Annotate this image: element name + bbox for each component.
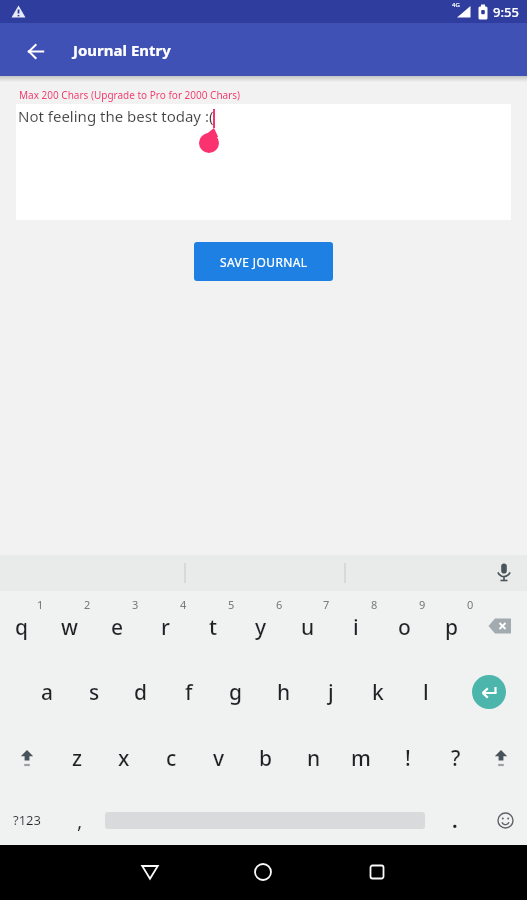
button[interactable]: v <box>196 728 242 788</box>
staticText: x <box>118 744 130 773</box>
staticText: Max 200 Chars (Upgrade to Pro for 2000 C… <box>19 88 241 102</box>
staticText: 9 <box>419 597 426 612</box>
staticText: y <box>255 613 267 642</box>
button[interactable]: l <box>403 662 449 722</box>
button[interactable] <box>132 854 168 890</box>
button[interactable]: k <box>355 662 401 722</box>
staticText: e <box>111 613 124 642</box>
staticText: f <box>185 678 193 707</box>
button[interactable] <box>472 675 506 709</box>
staticText: 3 <box>132 597 139 612</box>
button[interactable]: x <box>101 728 147 788</box>
button[interactable]: e <box>94 597 140 657</box>
staticText: 2 <box>84 597 91 612</box>
staticText: . <box>452 807 458 834</box>
button[interactable]: a <box>24 662 70 722</box>
staticText: c <box>166 744 177 773</box>
staticText: v <box>213 744 225 773</box>
button[interactable]: d <box>118 662 164 722</box>
button[interactable]: n <box>291 728 337 788</box>
button[interactable] <box>18 33 54 69</box>
staticText: w <box>61 613 78 642</box>
button[interactable] <box>359 854 395 890</box>
staticText: d <box>134 678 148 707</box>
button[interactable]: m <box>338 728 384 788</box>
button[interactable]: . <box>432 790 478 850</box>
staticText: 7 <box>323 597 330 612</box>
button[interactable]: , <box>57 790 103 850</box>
staticText: u <box>301 613 315 642</box>
button[interactable] <box>16 104 511 220</box>
button[interactable]: h <box>261 662 307 722</box>
button[interactable]: z <box>54 728 100 788</box>
button[interactable]: j <box>308 662 354 722</box>
staticText: ? <box>451 744 461 773</box>
staticText: g <box>229 678 243 707</box>
staticText: 5 <box>228 597 235 612</box>
staticText: i <box>353 613 359 642</box>
button[interactable]: u <box>285 597 331 657</box>
staticText: 0 <box>467 597 474 612</box>
staticText: m <box>351 744 371 773</box>
staticText: k <box>372 678 384 707</box>
button[interactable] <box>478 728 524 788</box>
staticText: s <box>89 678 100 707</box>
button[interactable]: ? <box>433 728 479 788</box>
button[interactable]: y <box>238 597 284 657</box>
staticText: l <box>423 678 429 707</box>
button[interactable]: ! <box>385 728 431 788</box>
button[interactable]: o <box>381 597 427 657</box>
staticText: a <box>41 678 54 707</box>
button[interactable]: q <box>0 597 45 657</box>
button[interactable]: SAVE JOURNAL <box>194 242 333 281</box>
staticText: q <box>15 613 29 642</box>
staticText: ! <box>405 744 411 773</box>
button[interactable]: s <box>71 662 117 722</box>
button[interactable]: f <box>166 662 212 722</box>
button[interactable]: b <box>243 728 289 788</box>
staticText: p <box>445 613 459 642</box>
staticText: b <box>259 744 273 773</box>
button[interactable]: i <box>333 597 379 657</box>
staticText: n <box>307 744 321 773</box>
staticText: h <box>277 678 291 707</box>
staticText: ?123 <box>13 811 41 829</box>
button[interactable]: c <box>148 728 194 788</box>
button[interactable]: t <box>190 597 236 657</box>
staticText: 4G <box>452 1 460 9</box>
button[interactable]: ?123 <box>2 790 52 850</box>
staticText: , <box>77 807 83 834</box>
staticText: t <box>209 613 218 642</box>
button[interactable]: r <box>142 597 188 657</box>
button[interactable] <box>482 790 527 850</box>
button[interactable]: g <box>213 662 259 722</box>
staticText: o <box>398 613 411 642</box>
staticText: 6 <box>276 597 283 612</box>
staticText: z <box>72 744 83 773</box>
staticText: 8 <box>371 597 378 612</box>
button[interactable] <box>477 596 523 656</box>
button[interactable] <box>245 854 281 890</box>
staticText: j <box>328 678 334 707</box>
staticText: Not feeling the best today :( <box>18 106 214 126</box>
staticText: 9:55 <box>493 3 519 21</box>
button[interactable] <box>487 556 521 590</box>
staticText: Journal Entry <box>73 40 171 60</box>
button[interactable]: w <box>46 597 92 657</box>
staticText: 1 <box>37 597 44 612</box>
staticText: SAVE JOURNAL <box>220 254 308 270</box>
button[interactable] <box>4 728 50 788</box>
staticText: r <box>161 613 170 642</box>
button[interactable]: p <box>429 597 475 657</box>
staticText: 4 <box>180 597 187 612</box>
